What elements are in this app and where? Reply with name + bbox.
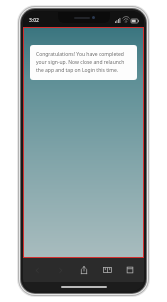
- button[interactable]: Congratulations! You have completed your…: [30, 45, 137, 80]
- button[interactable]: Tabs: [120, 262, 140, 278]
- staticText: Congratulations! You have completed your…: [36, 51, 131, 74]
- button[interactable]: Share: [74, 262, 94, 278]
- button[interactable]: Bookmarks: [97, 262, 117, 278]
- staticText: 3:02: [29, 17, 39, 24]
